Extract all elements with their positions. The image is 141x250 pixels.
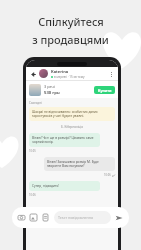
staticText: 530 грн xyxy=(44,90,60,96)
button[interactable]: Back xyxy=(29,70,37,78)
button[interactable]: Купити xyxy=(94,86,115,94)
staticText: 10:06 xyxy=(104,173,111,177)
staticText: Вітаю! Залишився розмір М. Буде зворотне… xyxy=(47,160,112,168)
button[interactable]: Attach file xyxy=(41,213,50,222)
button[interactable]: More options xyxy=(107,70,115,78)
staticText: Вітаю! Чи є ще в розмірі? Цікавить саме … xyxy=(32,136,97,144)
button[interactable]: Camera xyxy=(17,213,26,222)
staticText: Шахраї не відпочивають: особистих даних … xyxy=(32,110,112,118)
staticText: 3 речі xyxy=(44,84,55,89)
staticText: з продавцями xyxy=(32,32,109,47)
staticText: Katerina xyxy=(51,69,69,74)
button[interactable]: Текст повідомлення xyxy=(58,211,107,224)
button[interactable]: 3 речі xyxy=(29,81,115,98)
staticText: Спілкуйтеся xyxy=(38,14,104,29)
button[interactable]: Send xyxy=(114,213,124,223)
staticText: Супер, підходить! xyxy=(32,184,60,188)
button[interactable]: Katerina xyxy=(51,69,107,79)
button[interactable]: Вітаю! Чи є ще в розмірі? Цікавить саме … xyxy=(32,136,97,144)
staticText: Текст повідомлення xyxy=(58,215,107,220)
staticText: Купити xyxy=(98,88,112,93)
button[interactable]: Супер, підходить! xyxy=(32,184,97,188)
staticText: Сьогодні xyxy=(29,101,42,105)
button[interactable]: Gallery xyxy=(29,213,38,222)
button[interactable] xyxy=(39,69,48,78)
staticText: 10:05 xyxy=(29,149,36,153)
staticText: 10:06 xyxy=(29,193,36,197)
staticText: в мережі · 15 хв тому xyxy=(54,75,85,79)
button[interactable]: Вітаю! Залишився розмір М. Буде зворотне… xyxy=(47,160,112,168)
staticText: Б. Кіберполіція xyxy=(29,125,115,129)
